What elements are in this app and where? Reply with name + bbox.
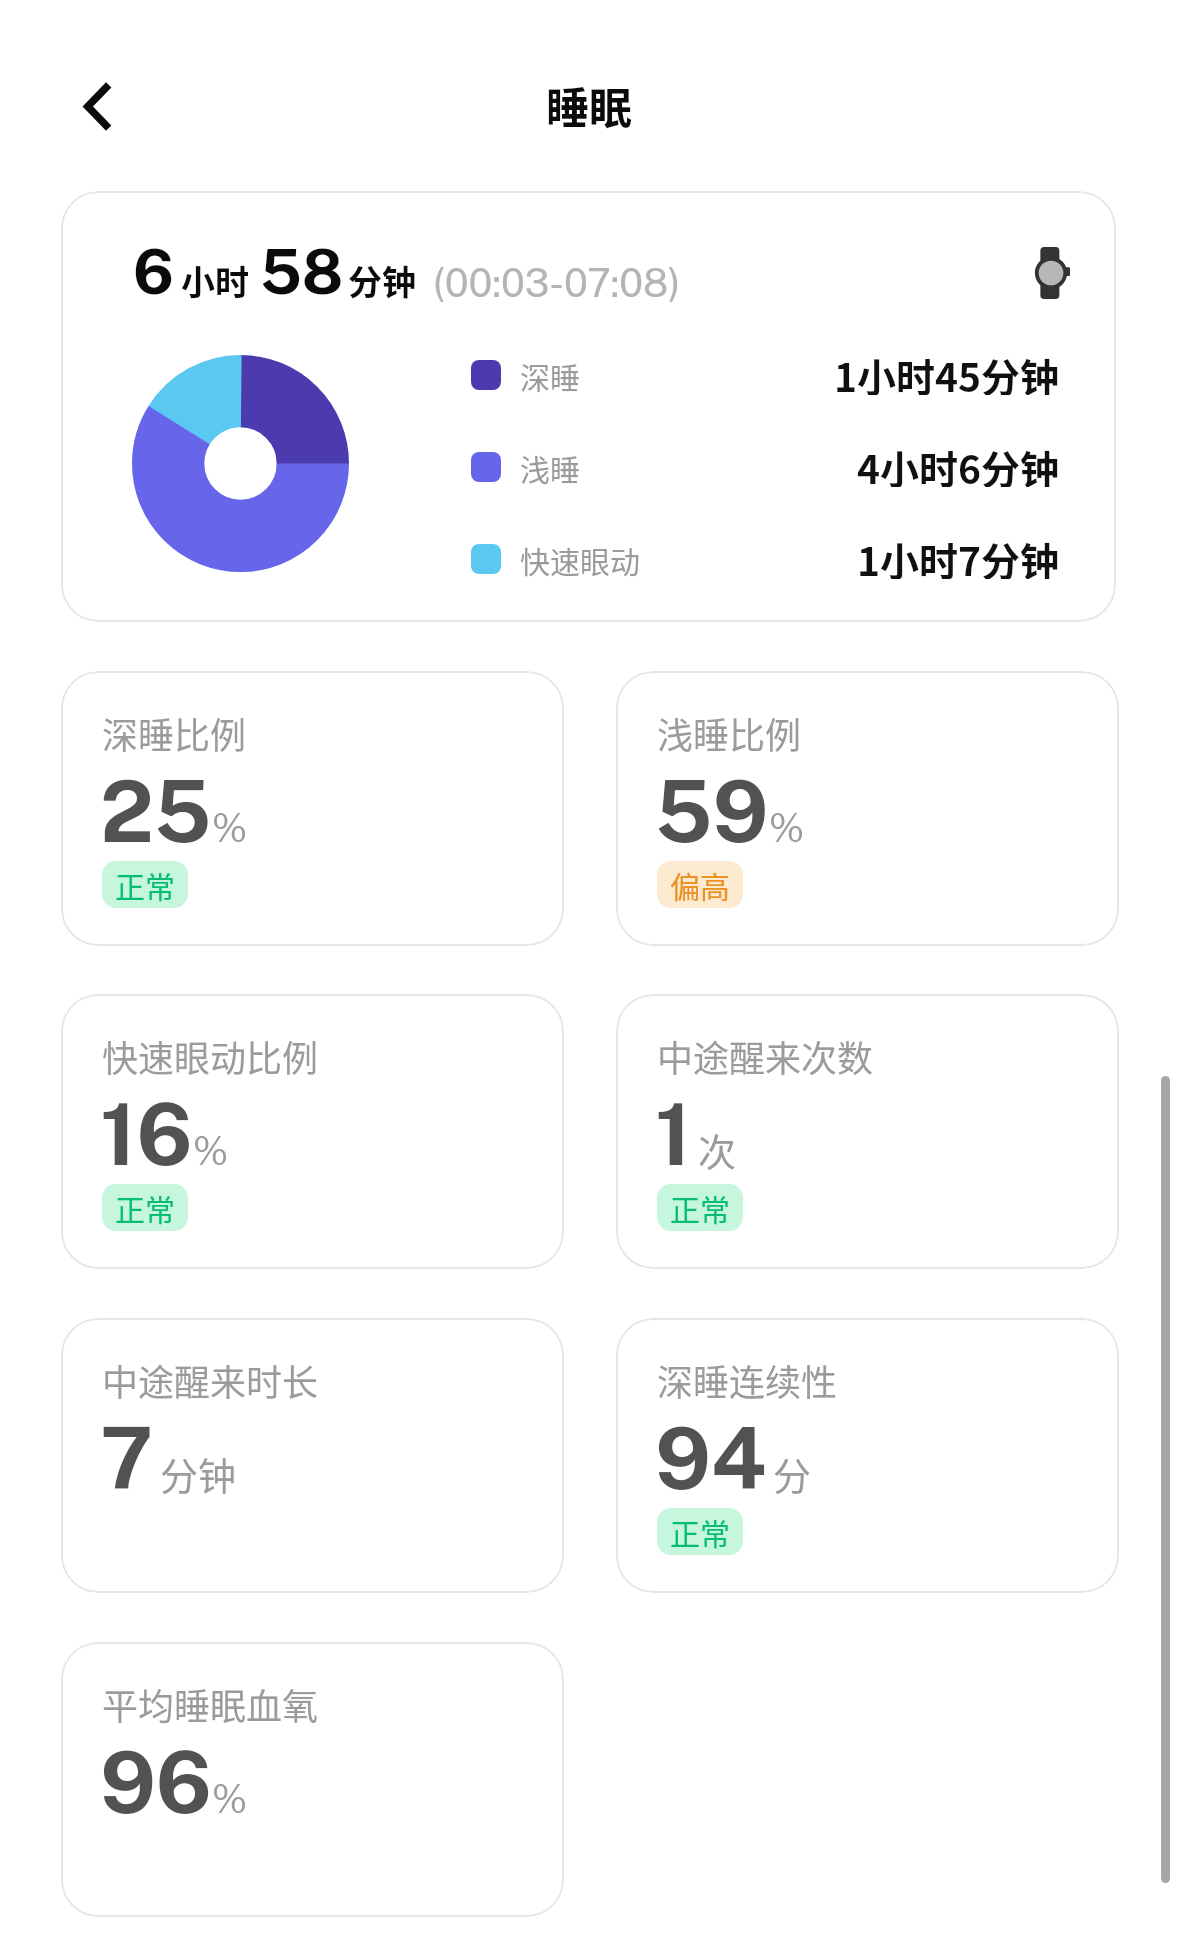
button[interactable]: 6 (61, 191, 1116, 622)
staticText: 次 (698, 1122, 737, 1177)
staticText: 分 (773, 1446, 812, 1501)
staticText: 7 (100, 1408, 154, 1508)
staticText: 中途醒来次数 (657, 1030, 874, 1082)
staticText: 4小时6分钟 (857, 439, 1060, 487)
staticText: 94 (655, 1408, 767, 1508)
staticText: 正常 (115, 1186, 175, 1229)
staticText: 96 (100, 1732, 212, 1832)
button[interactable]: 平均睡眠血氧 (61, 1642, 564, 1917)
staticText: % (212, 805, 248, 851)
button[interactable]: 中途醒来次数 (616, 994, 1119, 1269)
staticText: 58 (260, 235, 344, 308)
staticText: 偏高 (670, 863, 730, 906)
staticText: 小时 (181, 256, 249, 305)
staticText: 1小时7分钟 (857, 531, 1060, 579)
staticText: 快速眼动比例 (102, 1030, 319, 1082)
staticText: 16 (100, 1084, 193, 1184)
staticText: 浅睡 (520, 446, 580, 489)
staticText: 正常 (670, 1510, 730, 1553)
staticText: (00:03-07:08) (433, 260, 681, 306)
button[interactable]: Back (55, 64, 145, 146)
staticText: 深睡比例 (102, 707, 247, 759)
staticText: 中途醒来时长 (102, 1354, 319, 1406)
button[interactable]: 深睡连续性 (616, 1318, 1119, 1593)
staticText: 正常 (115, 863, 175, 906)
button[interactable]: 浅睡比例 (616, 671, 1119, 946)
staticText: 25 (100, 761, 212, 861)
staticText: 深睡连续性 (657, 1354, 838, 1406)
staticText: 浅睡比例 (657, 707, 802, 759)
staticText: 平均睡眠血氧 (102, 1678, 319, 1730)
staticText: 睡眠 (546, 74, 632, 136)
staticText: 59 (655, 761, 769, 861)
button[interactable]: 快速眼动比例 (61, 994, 564, 1269)
staticText: 1 (655, 1084, 692, 1184)
staticText: % (193, 1128, 229, 1174)
staticText: 正常 (670, 1186, 730, 1229)
staticText: 深睡 (520, 354, 580, 397)
staticText: % (212, 1776, 248, 1822)
button[interactable]: 深睡比例 (61, 671, 564, 946)
staticText: 6 (133, 235, 174, 308)
staticText: 分钟 (348, 256, 416, 305)
staticText: 分钟 (160, 1446, 237, 1501)
staticText: 快速眼动 (520, 538, 640, 581)
staticText: % (769, 805, 805, 851)
staticText: 1小时45分钟 (834, 347, 1060, 395)
button[interactable]: 中途醒来时长 (61, 1318, 564, 1593)
other: Watch device (1032, 247, 1070, 299)
